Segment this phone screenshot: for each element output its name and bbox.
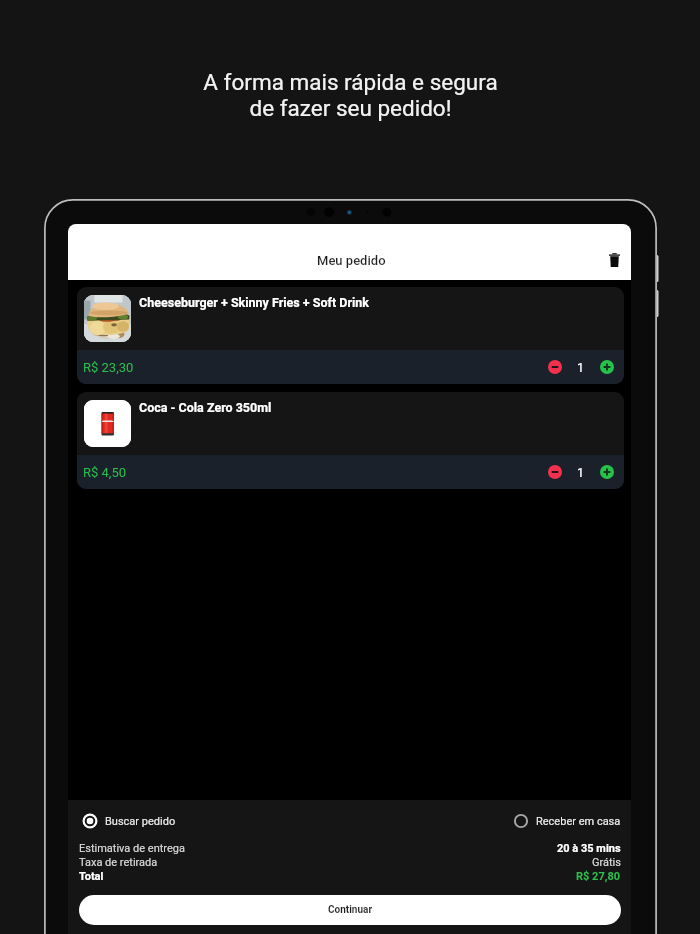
staticText: R$ 23,30 bbox=[83, 360, 134, 375]
button[interactable]: Coca - Cola Zero 350ml bbox=[77, 392, 624, 489]
button[interactable]: Aumentar bbox=[597, 357, 617, 377]
button[interactable]: Cheeseburger + Skinny Fries + Soft Drink bbox=[77, 287, 624, 384]
button[interactable]: Excluir pedido bbox=[601, 247, 627, 273]
button[interactable]: Diminuir bbox=[545, 462, 565, 482]
staticText: Cheeseburger + Skinny Fries + Soft Drink bbox=[139, 295, 370, 310]
staticText: R$ 4,50 bbox=[83, 465, 127, 480]
staticText: A forma mais rápida e segura de fazer se… bbox=[203, 69, 498, 122]
staticText: Continuar bbox=[328, 904, 373, 916]
button[interactable]: Aumentar bbox=[597, 462, 617, 482]
button[interactable]: Receber em casa bbox=[513, 813, 621, 829]
staticText: Estimativa de entrega bbox=[79, 842, 185, 855]
staticText: R$ 27,80 bbox=[576, 870, 621, 883]
button[interactable]: Continuar bbox=[79, 895, 621, 925]
staticText: 20 à 35 mins bbox=[557, 842, 621, 855]
staticText: Buscar pedido bbox=[105, 815, 176, 828]
staticText: Receber em casa bbox=[536, 815, 621, 828]
staticText: Total bbox=[79, 870, 104, 883]
staticText: Grátis bbox=[592, 856, 621, 869]
staticText: 1 bbox=[577, 360, 585, 375]
staticText: Meu pedido bbox=[317, 253, 386, 268]
staticText: Coca - Cola Zero 350ml bbox=[139, 400, 272, 415]
button[interactable]: Buscar pedido bbox=[82, 813, 176, 829]
staticText: 1 bbox=[577, 465, 585, 480]
button[interactable]: Diminuir bbox=[545, 357, 565, 377]
staticText: Taxa de retirada bbox=[79, 856, 158, 869]
